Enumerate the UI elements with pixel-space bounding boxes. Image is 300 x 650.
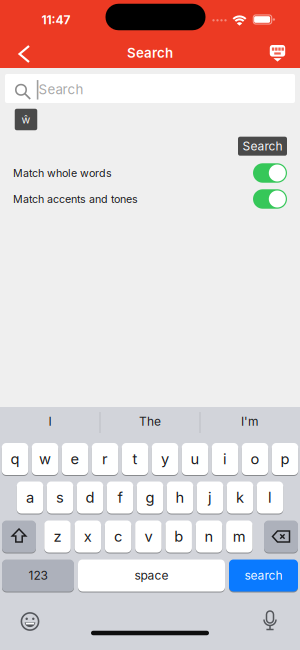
button[interactable]: l xyxy=(257,481,283,514)
button[interactable]: 123 xyxy=(2,559,74,592)
button[interactable]: x xyxy=(74,520,101,553)
staticText: t xyxy=(132,450,137,468)
staticText: Search xyxy=(38,82,83,97)
staticText: 123 xyxy=(28,568,47,583)
staticText: w xyxy=(39,450,51,468)
staticText: 11:47 xyxy=(41,13,70,27)
staticText: a xyxy=(26,489,34,506)
button[interactable]: Shift xyxy=(2,520,36,553)
button[interactable]: r xyxy=(92,442,118,475)
staticText: u xyxy=(190,450,199,468)
staticText: search xyxy=(244,568,282,583)
button[interactable]: t xyxy=(122,442,148,475)
button[interactable]: b xyxy=(165,520,192,553)
staticText: n xyxy=(204,528,213,545)
staticText: y xyxy=(161,450,169,468)
button[interactable]: w xyxy=(32,442,58,475)
button[interactable]: p xyxy=(272,442,298,475)
button[interactable]: u xyxy=(182,442,208,475)
staticText: ŵ xyxy=(21,113,30,126)
button[interactable]: y xyxy=(152,442,178,475)
staticText: e xyxy=(70,450,79,468)
staticText: j xyxy=(208,489,212,506)
button[interactable]: ŵ xyxy=(15,109,37,130)
staticText: h xyxy=(175,489,184,506)
staticText: l xyxy=(268,489,272,506)
staticText: I'm xyxy=(241,414,259,429)
staticText: r xyxy=(102,450,108,468)
button[interactable]: Emoji xyxy=(18,609,42,633)
button[interactable]: space xyxy=(78,559,225,592)
button[interactable]: Delete xyxy=(264,520,298,553)
button[interactable]: Match whole words xyxy=(253,163,287,183)
button[interactable]: I xyxy=(2,408,98,435)
staticText: c xyxy=(114,528,122,545)
button[interactable]: c xyxy=(105,520,131,553)
staticText: Search xyxy=(242,139,282,153)
staticText: o xyxy=(250,450,259,468)
button[interactable]: Back xyxy=(8,38,40,68)
button[interactable]: h xyxy=(167,481,193,514)
button[interactable]: Search xyxy=(5,74,295,103)
staticText: i xyxy=(223,450,227,468)
button[interactable]: The xyxy=(102,408,198,435)
staticText: x xyxy=(84,528,92,545)
button[interactable]: z xyxy=(44,520,71,553)
button[interactable]: f xyxy=(107,481,133,514)
staticText: Match accents and tones xyxy=(13,193,138,205)
staticText: z xyxy=(53,528,61,545)
button[interactable]: d xyxy=(77,481,103,514)
button[interactable]: s xyxy=(47,481,73,514)
button[interactable]: g xyxy=(137,481,163,514)
button[interactable]: m xyxy=(226,520,253,553)
button[interactable]: Search xyxy=(238,137,287,156)
button[interactable]: j xyxy=(197,481,223,514)
button[interactable]: a xyxy=(17,481,43,514)
staticText: p xyxy=(280,450,289,468)
staticText: q xyxy=(10,450,19,468)
staticText: v xyxy=(144,528,152,545)
staticText: b xyxy=(174,528,183,545)
button[interactable]: q xyxy=(2,442,28,475)
staticText: Match whole words xyxy=(13,167,112,179)
button[interactable]: Dictation xyxy=(258,609,282,633)
button[interactable]: v xyxy=(135,520,162,553)
button[interactable]: Dismiss Keyboard xyxy=(262,42,292,68)
staticText: I xyxy=(48,414,51,429)
staticText: k xyxy=(236,489,244,506)
button[interactable]: Match accents and tones xyxy=(253,189,287,209)
staticText: f xyxy=(117,489,122,506)
staticText: s xyxy=(56,489,64,506)
staticText: space xyxy=(134,568,168,583)
button[interactable]: k xyxy=(227,481,253,514)
staticText: The xyxy=(139,414,161,429)
button[interactable]: i xyxy=(212,442,238,475)
button[interactable]: o xyxy=(242,442,268,475)
staticText: Search xyxy=(127,45,173,61)
staticText: g xyxy=(145,489,154,506)
button[interactable]: n xyxy=(196,520,222,553)
staticText: m xyxy=(233,528,246,545)
staticText: d xyxy=(85,489,94,506)
button[interactable]: I'm xyxy=(202,408,298,435)
button[interactable]: e xyxy=(62,442,88,475)
button[interactable]: search xyxy=(229,559,298,592)
